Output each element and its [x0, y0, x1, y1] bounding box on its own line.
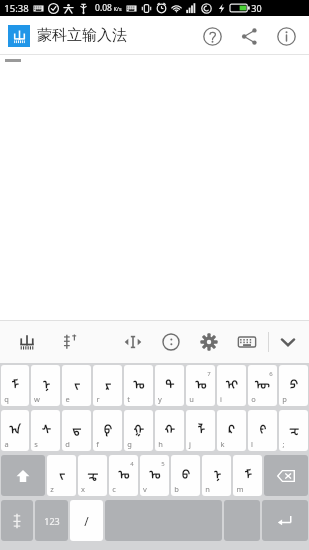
button[interactable]: Mongolian layout: [14, 329, 40, 355]
staticText: k: [220, 439, 225, 449]
button[interactable]: ᠠ: [1, 410, 29, 451]
staticText: p: [282, 394, 287, 404]
button[interactable]: Hide keyboard: [275, 329, 301, 355]
button[interactable]: Help: [198, 22, 226, 50]
button[interactable]: [8, 25, 30, 47]
staticText: 5: [161, 460, 165, 468]
staticText: 4: [130, 460, 134, 468]
button[interactable]: ᠬ: [155, 410, 184, 451]
button[interactable]: /: [70, 500, 103, 541]
button[interactable]: Shift: [1, 455, 45, 496]
button[interactable]: Settings: [196, 329, 222, 355]
button[interactable]: ᠮ: [1, 365, 29, 406]
staticText: 30: [251, 2, 262, 14]
staticText: m: [236, 484, 244, 494]
staticText: e: [65, 394, 70, 404]
staticText: ᠨ: [42, 372, 50, 393]
staticText: ᠤ: [149, 462, 161, 483]
staticText: ᠲ: [165, 372, 174, 393]
staticText: ᠠ: [9, 417, 21, 438]
staticText: K/s: [113, 5, 122, 12]
button[interactable]: 123: [35, 500, 68, 541]
staticText: r: [96, 394, 100, 404]
button[interactable]: ᠺ: [217, 410, 246, 451]
staticText: ᠨ: [213, 462, 221, 483]
staticText: ᠣ: [118, 462, 130, 483]
staticText: 0.08: [95, 2, 112, 14]
button[interactable]: Backspace: [264, 455, 308, 496]
staticText: ᠯ: [197, 417, 205, 438]
staticText: ᠹ: [103, 417, 112, 438]
button[interactable]: ᠼ: [78, 455, 107, 496]
button[interactable]: ᠰ: [31, 410, 60, 451]
button[interactable]: Tools: [158, 329, 184, 355]
button[interactable]: ᠣ: [124, 365, 153, 406]
button[interactable]: Enter: [262, 500, 308, 541]
button[interactable]: ᠣ: [109, 455, 138, 496]
staticText: ᠺ: [228, 417, 235, 438]
button[interactable]: ᠹ: [93, 410, 122, 451]
button[interactable]: ᠤ: [140, 455, 169, 496]
staticText: ᠻ: [259, 417, 266, 438]
staticText: ᠳ: [72, 417, 81, 438]
button[interactable]: ᠲ: [155, 365, 184, 406]
button[interactable]: ᠥ: [248, 365, 277, 406]
button[interactable]: Info: [272, 22, 300, 50]
staticText: j: [189, 439, 191, 449]
staticText: 蒙科立输入法: [37, 26, 127, 45]
button[interactable]: ᠮ: [233, 455, 262, 496]
button[interactable]: Share: [235, 22, 263, 50]
staticText: d: [65, 439, 70, 449]
staticText: ᠰ: [41, 417, 51, 438]
button[interactable]: ᠷ: [93, 365, 122, 406]
staticText: 123: [44, 515, 60, 527]
staticText: ᠭ: [133, 417, 144, 438]
button[interactable]: ᠨ: [31, 365, 60, 406]
staticText: 6: [269, 370, 273, 378]
staticText: u: [189, 394, 194, 404]
button[interactable]: Keyboard layout: [234, 329, 260, 355]
button[interactable]: Language: [1, 500, 33, 541]
staticText: ᠮ: [244, 462, 252, 483]
staticText: h: [158, 439, 163, 449]
staticText: ᠵ: [74, 372, 80, 393]
button[interactable]: ᠵ: [62, 365, 91, 406]
staticText: o: [251, 394, 256, 404]
staticText: ᠤ: [195, 372, 207, 393]
staticText: ᠷ: [105, 372, 111, 393]
button[interactable]: ᠵ: [47, 455, 76, 496]
staticText: 15:38: [4, 2, 29, 15]
staticText: ᠫ: [289, 372, 298, 393]
staticText: s: [34, 439, 38, 449]
staticText: z: [50, 484, 54, 494]
staticText: ᠣ: [133, 372, 145, 393]
staticText: a: [4, 439, 9, 449]
button[interactable]: ᠻ: [248, 410, 277, 451]
button[interactable]: Vertical script: [56, 329, 82, 355]
staticText: ᠥ: [255, 372, 270, 393]
button[interactable]: ᠨ: [202, 455, 231, 496]
button[interactable]: ᠽ: [279, 410, 308, 451]
staticText: ;: [282, 439, 285, 449]
button[interactable]: ᠪ: [171, 455, 200, 496]
staticText: v: [143, 484, 147, 494]
staticText: n: [205, 484, 210, 494]
button[interactable]: ᠤ: [186, 365, 215, 406]
button[interactable]: ᠢ: [217, 365, 246, 406]
button[interactable]: ᠯ: [186, 410, 215, 451]
button[interactable]: ᠳ: [62, 410, 91, 451]
staticText: i: [220, 394, 222, 404]
staticText: c: [112, 484, 116, 494]
staticText: w: [34, 394, 40, 404]
staticText: f: [96, 439, 99, 449]
staticText: 7: [207, 370, 211, 378]
staticText: /: [84, 513, 89, 529]
button[interactable]: ᠭ: [124, 410, 153, 451]
button[interactable]: ᠫ: [279, 365, 308, 406]
staticText: ᠪ: [181, 462, 190, 483]
button[interactable]: Move cursor: [120, 329, 146, 355]
staticText: g: [127, 439, 132, 449]
staticText: y: [158, 394, 162, 404]
